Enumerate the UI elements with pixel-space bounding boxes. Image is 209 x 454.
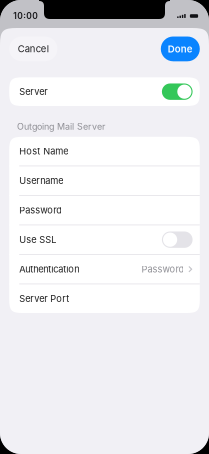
staticText: Outgoing Mail Server [17,121,105,132]
staticText: Done [168,43,193,55]
staticText: Server Port [19,293,69,304]
staticText: Host Name [19,146,68,157]
staticText: 10:00 [13,11,38,21]
button[interactable]: Server Port [9,284,200,313]
staticText: Password [19,205,62,216]
staticText: Cancel [18,43,49,55]
staticText: Username [19,175,63,186]
button[interactable]: Use SSL [9,225,200,254]
staticText: Password [141,264,184,275]
button[interactable]: Password [9,196,200,224]
staticText: Use SSL [19,234,56,245]
staticText: Server [19,86,47,97]
button[interactable]: Done [161,36,200,61]
button[interactable]: Username [9,166,200,195]
button[interactable]: Server [9,77,200,106]
button[interactable]: Host Name [9,137,200,165]
button[interactable]: Authentication [9,255,200,283]
button[interactable]: Cancel [9,37,57,61]
staticText: Authentication [19,264,79,275]
